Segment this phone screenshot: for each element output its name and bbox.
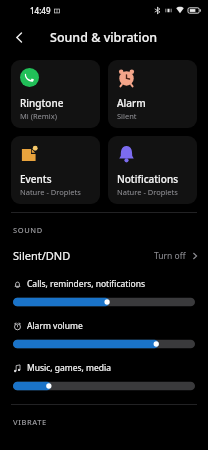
staticText: Nature - Droplets: [117, 187, 178, 197]
staticText: SOUND: [13, 225, 43, 235]
staticText: Music, games, media: [27, 362, 112, 374]
staticText: Events: [20, 172, 52, 186]
button[interactable]: Events: [11, 136, 100, 204]
staticText: VIBRATE: [13, 417, 47, 427]
button[interactable]: Ringtone: [11, 60, 100, 128]
button[interactable]: Back: [4, 22, 34, 52]
staticText: Mi (Remix): [20, 111, 57, 121]
staticText: Turn off: [154, 250, 186, 262]
staticText: Nature - Droplets: [20, 187, 81, 197]
staticText: Sound & vibration: [50, 29, 158, 46]
staticText: Alarm volume: [27, 320, 83, 332]
staticText: Silent/DND: [13, 248, 71, 263]
staticText: Ringtone: [20, 96, 64, 110]
staticText: 14:49: [30, 5, 51, 16]
button[interactable]: Alarm: [108, 60, 197, 128]
staticText: Calls, reminders, notifications: [27, 278, 146, 290]
staticText: Notifications: [117, 172, 179, 186]
button[interactable]: Silent/DND: [0, 245, 208, 266]
staticText: Alarm: [117, 96, 146, 110]
button[interactable]: Music, games, media: [0, 362, 208, 392]
button[interactable]: Calls, reminders, notifications: [0, 278, 208, 308]
staticText: Silent: [117, 111, 137, 121]
button[interactable]: Alarm volume: [0, 320, 208, 350]
button[interactable]: Notifications: [108, 136, 197, 204]
